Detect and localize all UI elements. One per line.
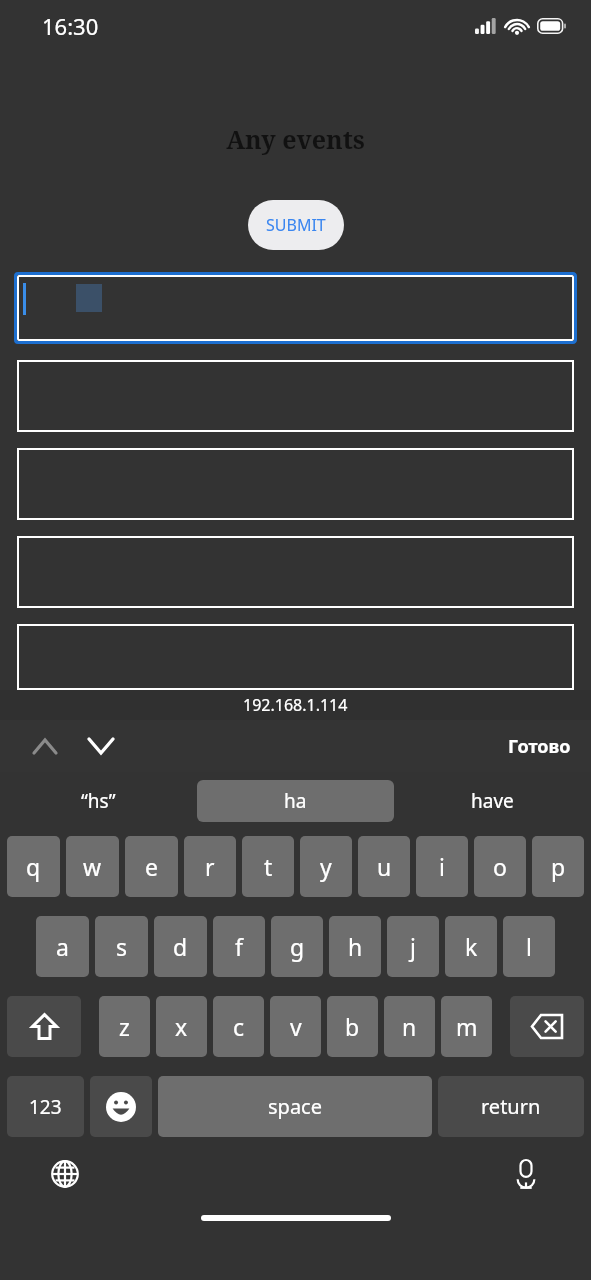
button[interactable] [17,624,574,690]
button[interactable]: ha [197,780,394,822]
staticText: e [145,851,158,882]
button[interactable]: s [95,916,148,977]
button[interactable]: Change keyboard language [40,1149,90,1199]
button[interactable]: a [36,916,89,977]
staticText: z [119,1011,130,1042]
staticText: x [175,1011,188,1042]
button[interactable] [17,536,574,608]
button[interactable]: k [445,916,497,977]
staticText: space [268,1093,322,1120]
staticText: “hs” [81,788,116,814]
staticText: SUBMIT [266,214,326,236]
staticText: i [439,851,445,882]
button[interactable]: q [7,836,60,897]
button[interactable]: w [66,836,119,897]
button[interactable]: Next field [80,725,122,767]
button[interactable]: e [125,836,178,897]
button[interactable]: z [99,996,150,1057]
button[interactable] [17,275,574,341]
button[interactable]: i [416,836,468,897]
button[interactable]: m [441,996,492,1057]
staticText: m [456,1011,478,1042]
staticText: q [26,851,41,882]
staticText: k [465,931,478,962]
staticText: v [290,1011,302,1042]
button[interactable]: Dictation [501,1149,551,1199]
button[interactable]: Emoji [90,1076,152,1137]
button[interactable]: o [474,836,526,897]
button[interactable]: l [503,916,555,977]
button[interactable]: p [532,836,584,897]
staticText: have [471,788,514,814]
staticText: u [377,851,392,882]
button[interactable]: b [327,996,378,1057]
staticText: g [290,931,305,962]
button[interactable]: have [394,772,591,830]
button[interactable]: Previous field [24,725,66,767]
staticText: h [348,931,363,962]
staticText: a [56,931,69,962]
staticText: r [205,851,215,882]
button[interactable]: u [358,836,410,897]
button[interactable]: y [300,836,352,897]
staticText: w [83,851,102,882]
button[interactable]: f [213,916,265,977]
staticText: 123 [29,1094,62,1120]
staticText: t [264,851,273,882]
staticText: return [481,1093,541,1120]
button[interactable]: SUBMIT [248,200,344,250]
staticText: o [493,851,507,882]
staticText: l [526,931,532,962]
staticText: p [551,851,566,882]
staticText: f [235,931,243,962]
staticText: Any events [0,122,591,156]
button[interactable] [17,448,574,520]
staticText: j [410,931,416,962]
button[interactable]: g [271,916,323,977]
staticText: d [173,931,188,962]
staticText: s [116,931,128,962]
button[interactable]: h [329,916,381,977]
button[interactable]: n [384,996,435,1057]
button[interactable] [17,360,574,432]
button[interactable]: Backspace [510,996,584,1057]
button[interactable]: r [184,836,236,897]
button[interactable]: space [158,1076,432,1137]
staticText: 16:30 [42,11,99,41]
button[interactable]: v [270,996,321,1057]
staticText: b [345,1011,360,1042]
staticText: ha [284,788,307,814]
button[interactable]: Shift [7,996,81,1057]
staticText: Готово [508,734,571,759]
button[interactable]: return [438,1076,584,1137]
button[interactable]: d [154,916,207,977]
staticText: 192.168.1.114 [243,694,348,716]
button[interactable]: j [387,916,439,977]
staticText: n [402,1011,417,1042]
button[interactable]: c [213,996,264,1057]
button[interactable]: 123 [7,1076,84,1137]
staticText: c [233,1011,245,1042]
button[interactable]: Готово [502,728,577,765]
button[interactable]: “hs” [0,772,197,830]
staticText: y [320,851,332,882]
button[interactable]: x [156,996,207,1057]
button[interactable]: t [242,836,294,897]
